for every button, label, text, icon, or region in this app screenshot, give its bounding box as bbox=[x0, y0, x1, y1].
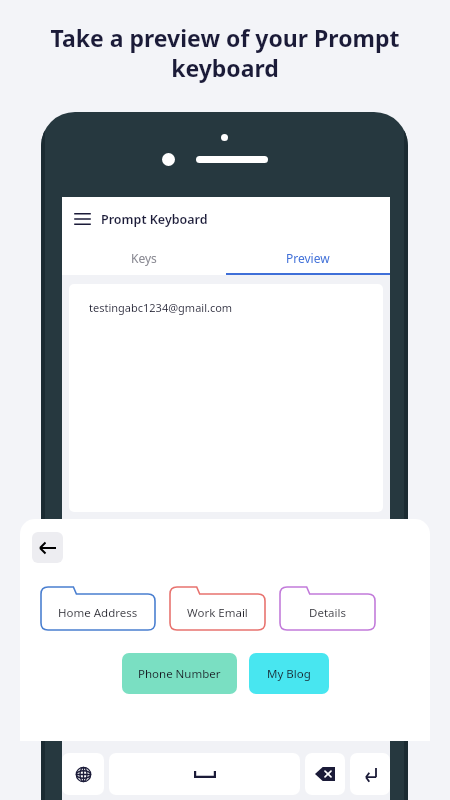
button[interactable]: Switch keyboard language bbox=[62, 753, 104, 795]
staticText: My Blog bbox=[267, 666, 311, 682]
button[interactable]: Details bbox=[278, 587, 377, 632]
button[interactable]: My Blog bbox=[249, 653, 329, 694]
button[interactable]: Keys bbox=[62, 241, 226, 275]
button[interactable]: Phone Number bbox=[122, 653, 237, 694]
button[interactable]: Open navigation menu bbox=[69, 206, 95, 232]
staticText: Take a preview of your Prompt keyboard bbox=[26, 22, 424, 84]
button[interactable]: Back bbox=[32, 532, 63, 563]
button[interactable]: Work Email bbox=[168, 587, 267, 632]
button[interactable]: Backspace bbox=[305, 753, 345, 795]
button[interactable]: Preview bbox=[226, 241, 390, 275]
staticText: testingabc1234@gmail.com bbox=[89, 300, 233, 315]
button[interactable]: Enter bbox=[350, 753, 390, 795]
staticText: Details bbox=[309, 605, 346, 621]
staticText: Keys bbox=[131, 250, 157, 266]
button[interactable]: testingabc1234@gmail.com bbox=[69, 284, 383, 512]
staticText: Prompt Keyboard bbox=[101, 211, 208, 228]
staticText: Work Email bbox=[187, 605, 248, 621]
button[interactable]: Space bbox=[109, 753, 300, 795]
staticText: Preview bbox=[286, 250, 330, 266]
staticText: Home Address bbox=[58, 605, 138, 621]
button[interactable]: Home Address bbox=[39, 587, 157, 632]
staticText: Phone Number bbox=[138, 666, 221, 682]
